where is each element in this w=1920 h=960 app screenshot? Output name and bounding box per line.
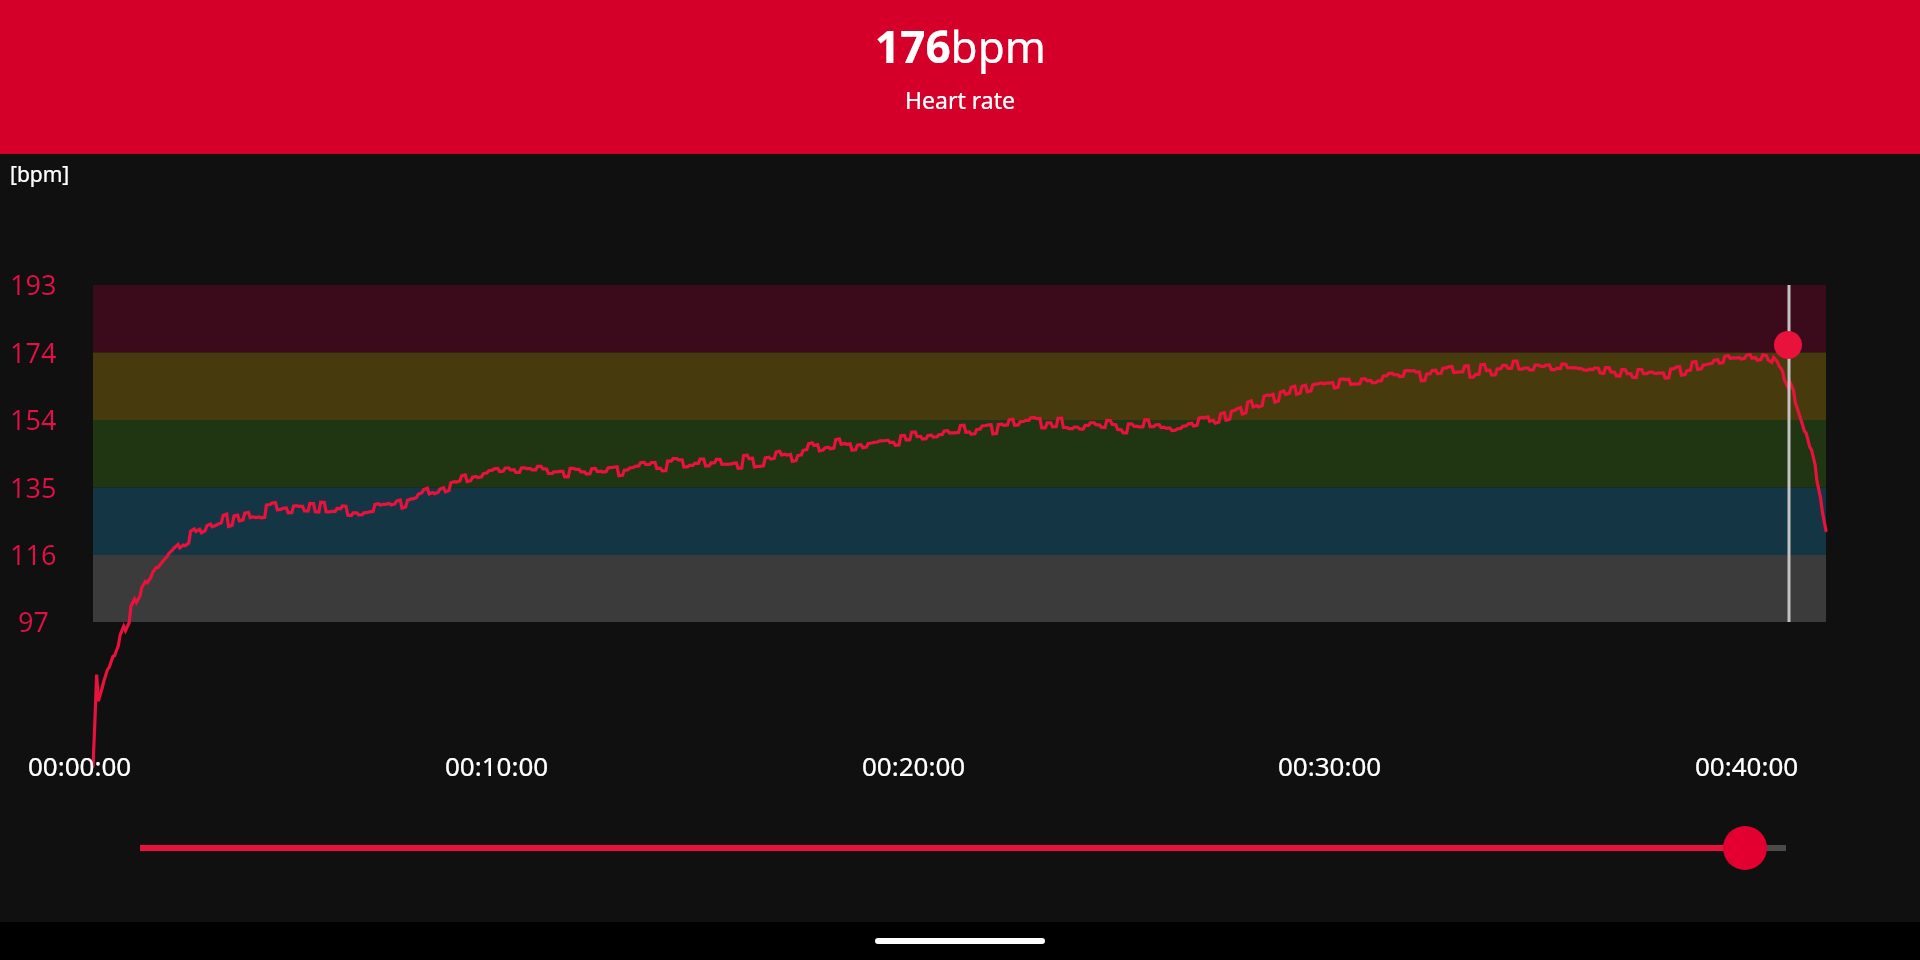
staticText: 97: [18, 603, 49, 640]
staticText: 00:30:00: [1278, 748, 1382, 783]
staticText: 116: [10, 536, 57, 573]
staticText: 00:40:00: [1695, 748, 1799, 783]
button[interactable]: Heart rate graph: [0, 154, 1920, 922]
staticText: 154: [10, 401, 57, 438]
staticText: Heart rate: [905, 84, 1015, 115]
staticText: 00:00:00: [28, 748, 132, 783]
staticText: 00:10:00: [445, 748, 549, 783]
staticText: 135: [10, 469, 57, 506]
button[interactable]: 176bpm: [0, 0, 1920, 154]
staticText: 193: [10, 266, 57, 303]
staticText: 176bpm: [875, 16, 1046, 76]
staticText: [bpm]: [10, 160, 70, 189]
staticText: 00:20:00: [862, 748, 966, 783]
staticText: 174: [10, 334, 57, 371]
